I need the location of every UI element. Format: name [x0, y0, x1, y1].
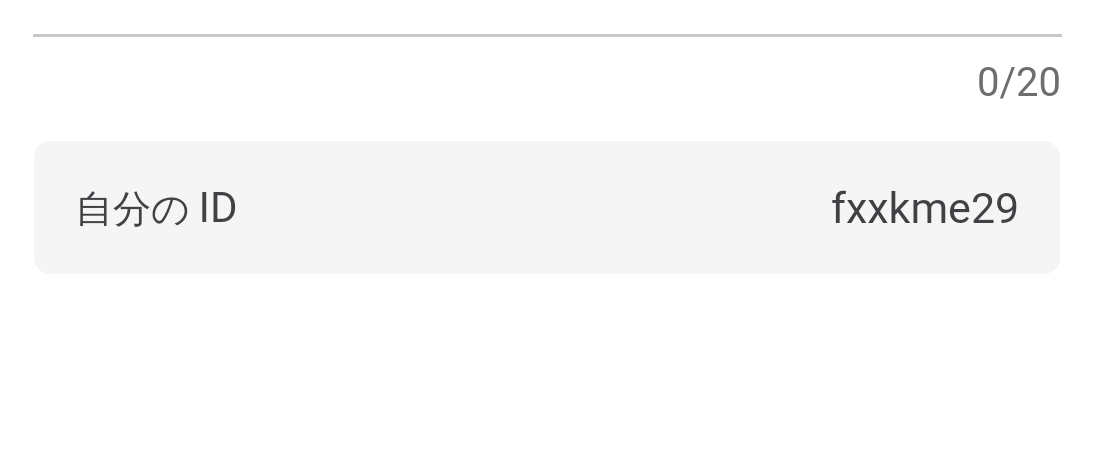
button[interactable]: 自分の ID — [34, 141, 1060, 274]
staticText: 自分の ID — [75, 183, 238, 233]
staticText: fxxkme29 — [831, 183, 1020, 233]
staticText: 0/20 — [977, 59, 1061, 106]
